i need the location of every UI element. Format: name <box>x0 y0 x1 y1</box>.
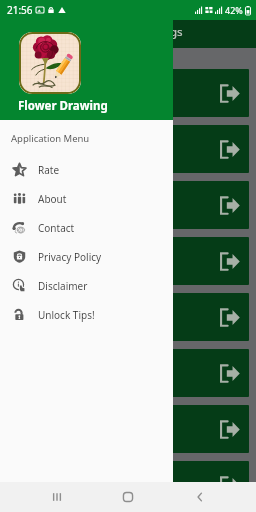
staticText: Flower Drawings <box>91 24 183 40</box>
staticText: Application Menu <box>11 132 90 145</box>
button[interactable]: Home <box>113 482 143 512</box>
button[interactable]: Open drawing <box>7 293 249 341</box>
button[interactable]: Open drawing <box>7 125 249 173</box>
button[interactable]: Open drawing <box>7 405 249 453</box>
other: Open drawing <box>218 252 240 271</box>
button[interactable]: Privacy Policy <box>0 242 173 271</box>
other: Open drawing <box>218 140 240 159</box>
button[interactable]: Rate <box>0 155 173 184</box>
button[interactable]: Recents <box>42 482 72 512</box>
button[interactable]: Open drawing <box>7 181 249 229</box>
staticText: Flower Drawing <box>18 98 108 114</box>
other: Open drawing <box>218 420 240 439</box>
staticText: Unlock Tips! <box>38 308 95 322</box>
staticText: 21:56 <box>7 3 33 17</box>
button[interactable]: Open drawing <box>7 69 249 117</box>
other: Open drawing <box>218 308 240 327</box>
other: Open drawing <box>218 364 240 383</box>
other: Open drawing <box>218 84 240 103</box>
other: Open drawing <box>218 476 240 495</box>
button[interactable]: Unlock Tips! <box>0 300 173 329</box>
staticText: Contact <box>38 221 75 235</box>
button[interactable]: Contact <box>0 213 173 242</box>
staticText: 42% <box>225 4 243 16</box>
button[interactable]: Open drawing <box>7 461 249 509</box>
other: Open drawing <box>218 196 240 215</box>
button[interactable]: Open drawing <box>7 237 249 285</box>
staticText: Rate <box>38 163 60 177</box>
staticText: Disclaimer <box>38 279 88 293</box>
button[interactable]: Open drawing <box>7 349 249 397</box>
staticText: About <box>38 192 67 206</box>
staticText: Privacy Policy <box>38 250 102 264</box>
button[interactable]: About <box>0 184 173 213</box>
button[interactable]: Back <box>185 482 215 512</box>
button[interactable]: Disclaimer <box>0 271 173 300</box>
